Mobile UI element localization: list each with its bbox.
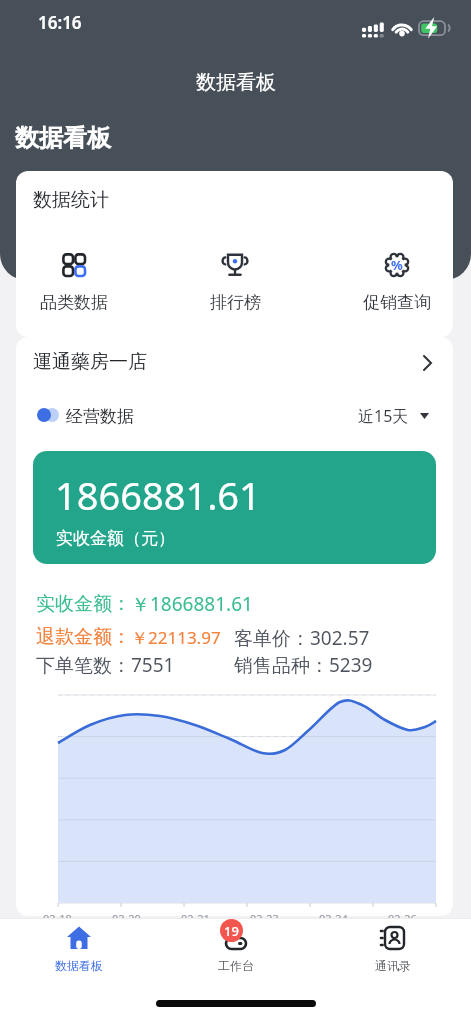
staticText: 数据统计	[33, 188, 109, 212]
staticText: 通讯录	[375, 958, 411, 973]
button[interactable]: 運通藥房一店	[16, 341, 453, 389]
staticText: 实收金额：	[36, 592, 131, 616]
staticText: 02-21	[181, 911, 210, 926]
staticText: 02-18	[43, 911, 72, 926]
staticText: 促销查询	[363, 292, 431, 313]
staticText: 02-26	[388, 911, 417, 926]
button[interactable]: 品类数据	[16, 252, 132, 313]
staticText: 運通藥房一店	[33, 350, 147, 374]
staticText: 排行榜	[210, 292, 261, 313]
staticText: 数据看板	[15, 123, 111, 153]
staticText: 实收金额（元）	[56, 528, 175, 549]
staticText: 02-23	[250, 911, 279, 926]
button[interactable]: 1866881.61	[33, 451, 436, 564]
staticText: 数据看板	[196, 70, 276, 95]
button[interactable]: 排行榜	[177, 252, 293, 313]
staticText: 工作台	[218, 958, 254, 973]
staticText: 近15天	[358, 405, 409, 427]
staticText: 退款金额：	[36, 625, 131, 649]
staticText: 02-20	[112, 911, 141, 926]
staticText: 客单价：302.57	[234, 625, 370, 651]
staticText: 品类数据	[40, 292, 108, 313]
staticText: ￥22113.97	[131, 626, 221, 649]
button[interactable]: 近15天	[346, 393, 453, 437]
staticText: 下单笔数：7551	[36, 652, 175, 678]
button[interactable]	[16, 687, 453, 904]
staticText: %	[391, 256, 403, 274]
staticText: 02-24	[319, 911, 348, 926]
staticText: 经营数据	[66, 406, 134, 427]
button[interactable]: 数据看板	[33, 922, 124, 973]
staticText: 1866881.61	[55, 469, 261, 521]
staticText: 数据看板	[55, 958, 103, 973]
staticText: ￥1866881.61	[131, 591, 253, 617]
button[interactable]: %	[339, 252, 455, 313]
button[interactable]: 通讯录	[347, 922, 438, 973]
button[interactable]: 工作台	[190, 922, 281, 973]
staticText: 销售品种：5239	[234, 652, 373, 678]
staticText: 16:16	[38, 11, 82, 34]
staticText: 19	[224, 922, 239, 940]
